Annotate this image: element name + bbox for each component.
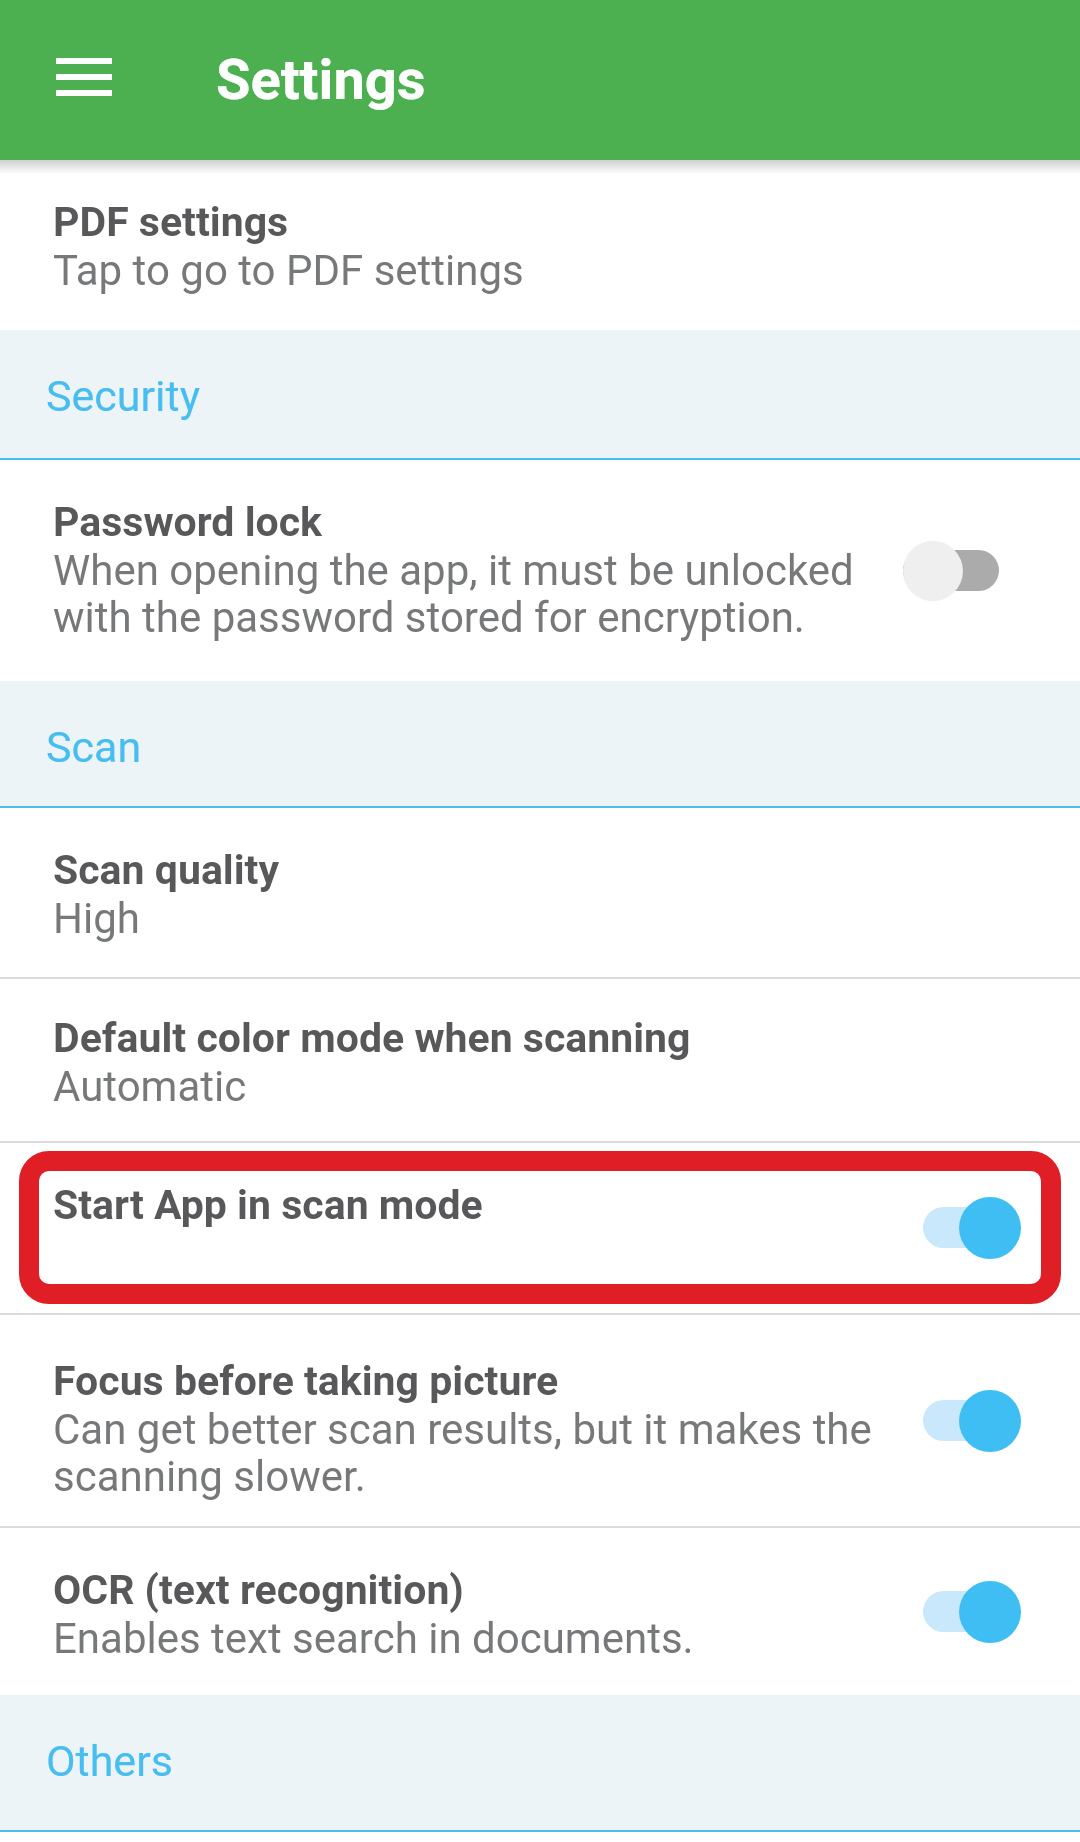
button[interactable]: Default color mode when scanning [0,979,1080,1141]
button[interactable] [56,58,112,96]
staticText: Password lock [53,498,323,546]
staticText: Automatic [53,1062,247,1111]
staticText: Focus before taking picture [53,1357,559,1405]
staticText: OCR (text recognition) [53,1566,464,1614]
staticText: PDF settings [53,198,289,246]
button[interactable]: PDF settings [0,160,1080,330]
button[interactable]: Focus before taking picture [0,1315,1080,1526]
button[interactable]: Password lock [0,460,1080,681]
staticText: Can get better scan results, but it make… [53,1405,872,1501]
staticText: High [53,894,140,943]
staticText: When opening the app, it must be unlocke… [53,546,854,642]
button[interactable]: Scan quality [0,808,1080,977]
staticText: Tap to go to PDF settings [53,246,524,295]
staticText: Enables text search in documents. [53,1614,694,1663]
staticText: Scan [46,722,142,772]
button[interactable]: Start App in scan mode [0,1143,1080,1313]
staticText: Start App in scan mode [53,1181,483,1229]
staticText: Default color mode when scanning [53,1014,691,1062]
button[interactable]: OCR (text recognition) [0,1528,1080,1695]
staticText: Scan quality [53,846,280,894]
staticText: Security [46,371,200,421]
staticText: Others [46,1736,173,1786]
staticText: Settings [216,47,426,113]
